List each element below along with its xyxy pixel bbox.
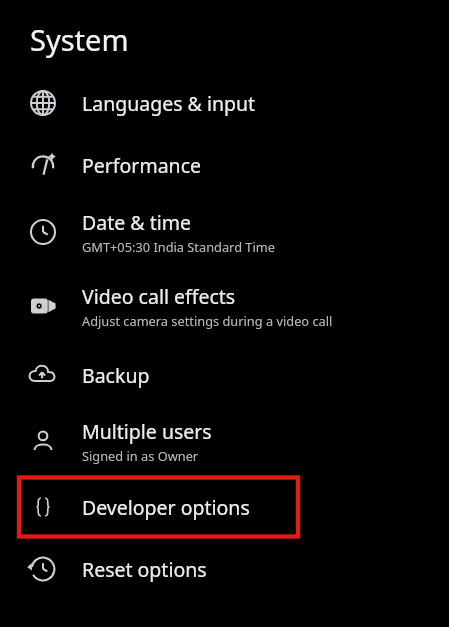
other: Backup	[28, 360, 58, 390]
button[interactable]: Languages and input	[0, 72, 449, 134]
button[interactable]: Video call effects	[0, 268, 449, 344]
button[interactable]: Date and time	[0, 196, 449, 268]
staticText: GMT+05:30 India Standard Time	[82, 238, 275, 255]
other: Date and time	[28, 217, 58, 247]
other: Developer options	[28, 492, 58, 522]
button[interactable]: Backup	[0, 344, 449, 406]
staticText: Backup	[82, 362, 150, 389]
staticText: Reset options	[82, 556, 207, 583]
staticText: Adjust camera settings during a video ca…	[82, 312, 333, 329]
staticText: Developer options	[82, 494, 250, 521]
other: Video call effects	[28, 291, 58, 321]
button[interactable]: Performance	[0, 134, 449, 196]
staticText: Date & time	[82, 209, 191, 236]
other: Reset options	[28, 554, 58, 584]
button[interactable]: Developer options	[0, 476, 449, 538]
staticText: Performance	[82, 152, 201, 179]
staticText: Signed in as Owner	[82, 447, 199, 464]
other: Languages and input	[28, 88, 58, 118]
button[interactable]: Multiple users	[0, 406, 449, 476]
other: Multiple users	[28, 426, 58, 456]
button[interactable]: Reset options	[0, 538, 449, 600]
staticText: System	[30, 20, 129, 59]
staticText: Video call effects	[82, 283, 236, 310]
other: Performance	[28, 150, 58, 180]
staticText: Languages & input	[82, 90, 256, 117]
staticText: Multiple users	[82, 418, 212, 445]
